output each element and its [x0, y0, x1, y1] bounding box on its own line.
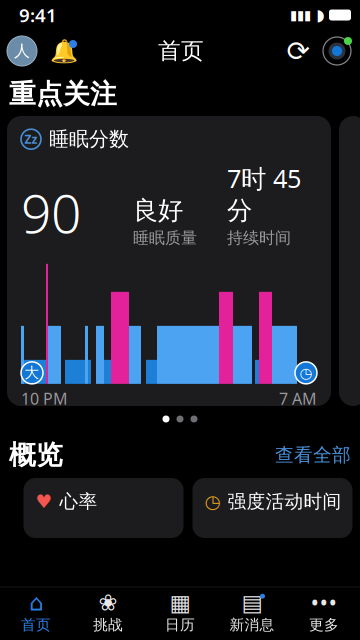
- button[interactable]: ◷: [192, 478, 352, 538]
- staticText: 9:41: [19, 3, 57, 27]
- button[interactable]: ▤: [216, 590, 288, 636]
- staticText: 首页: [158, 37, 204, 65]
- button[interactable]: 通知: [49, 36, 79, 66]
- staticText: 概览: [9, 439, 63, 471]
- staticText: 大: [24, 364, 39, 382]
- button[interactable]: 个人资料: [7, 36, 37, 66]
- staticText: 日历: [165, 616, 195, 634]
- button[interactable]: Zz: [7, 116, 331, 406]
- staticText: 更多: [309, 616, 339, 634]
- staticText: ▦: [169, 590, 190, 616]
- button[interactable]: ♥: [23, 478, 183, 538]
- button[interactable]: ▦: [144, 590, 216, 636]
- staticText: 7 AM: [279, 388, 317, 409]
- staticText: 睡眠分数: [49, 127, 129, 151]
- staticText: •••: [310, 588, 337, 618]
- staticText: ◷: [204, 491, 220, 512]
- button[interactable]: 查看全部: [275, 443, 360, 466]
- staticText: ▤: [241, 590, 262, 616]
- staticText: 强度活动时间: [227, 490, 341, 513]
- staticText: 首页: [21, 616, 51, 634]
- staticText: 🔔: [50, 38, 78, 64]
- button[interactable]: ⌂: [0, 590, 72, 636]
- staticText: ⟳: [286, 35, 309, 67]
- staticText: 心率: [59, 490, 97, 513]
- staticText: ⌂: [29, 590, 43, 616]
- staticText: 良好: [133, 195, 183, 226]
- staticText: 重点关注: [9, 78, 117, 110]
- staticText: ♥: [35, 491, 52, 512]
- staticText: 新消息: [229, 616, 274, 634]
- staticText: 90: [21, 177, 81, 248]
- staticText: 7时 45分: [227, 161, 301, 226]
- button[interactable]: 已连接的手表: [323, 37, 351, 65]
- button[interactable]: •••: [288, 590, 360, 636]
- staticText: 人: [14, 41, 30, 61]
- staticText: 10 PM: [21, 388, 68, 409]
- staticText: 挑战: [93, 616, 123, 634]
- staticText: ▮▮▮: [290, 7, 311, 22]
- staticText: ❀: [98, 590, 117, 616]
- staticText: Zz: [24, 131, 37, 147]
- button[interactable]: ❀: [72, 590, 144, 636]
- button[interactable]: 同步: [283, 36, 313, 66]
- staticText: 睡眠质量: [133, 228, 197, 248]
- staticText: ◗: [316, 6, 324, 24]
- staticText: ◷: [299, 364, 312, 381]
- staticText: 查看全部: [275, 443, 351, 466]
- staticText: 持续时间: [227, 228, 291, 248]
